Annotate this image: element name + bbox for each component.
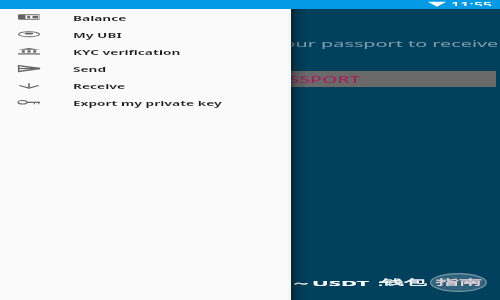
staticText: Receive — [73, 81, 126, 91]
button[interactable]: Export my private key — [0, 94, 291, 111]
staticText: Export my private key — [73, 98, 222, 108]
staticText: 钱包 — [381, 278, 427, 287]
staticText: 指南 — [436, 278, 482, 287]
staticText: GET PASSPORT — [224, 74, 362, 85]
staticText: Send — [73, 64, 106, 74]
staticText: 11:55 — [451, 0, 494, 6]
staticText: Balance — [73, 13, 127, 23]
button[interactable]: Receive — [0, 77, 291, 94]
button[interactable]: Balance — [0, 9, 291, 26]
button[interactable]: KYC verification — [0, 43, 291, 60]
other: Wifi — [427, 1, 447, 7]
staticText: KYC verification — [73, 47, 182, 57]
button[interactable]: Send — [0, 60, 291, 77]
staticText: ～USDT： — [290, 278, 391, 289]
button[interactable]: My UBI — [0, 26, 291, 43]
staticText: You need your passport to receive — [182, 38, 499, 49]
staticText: My UBI — [73, 30, 123, 40]
button[interactable]: GET PASSPORT — [90, 71, 496, 87]
